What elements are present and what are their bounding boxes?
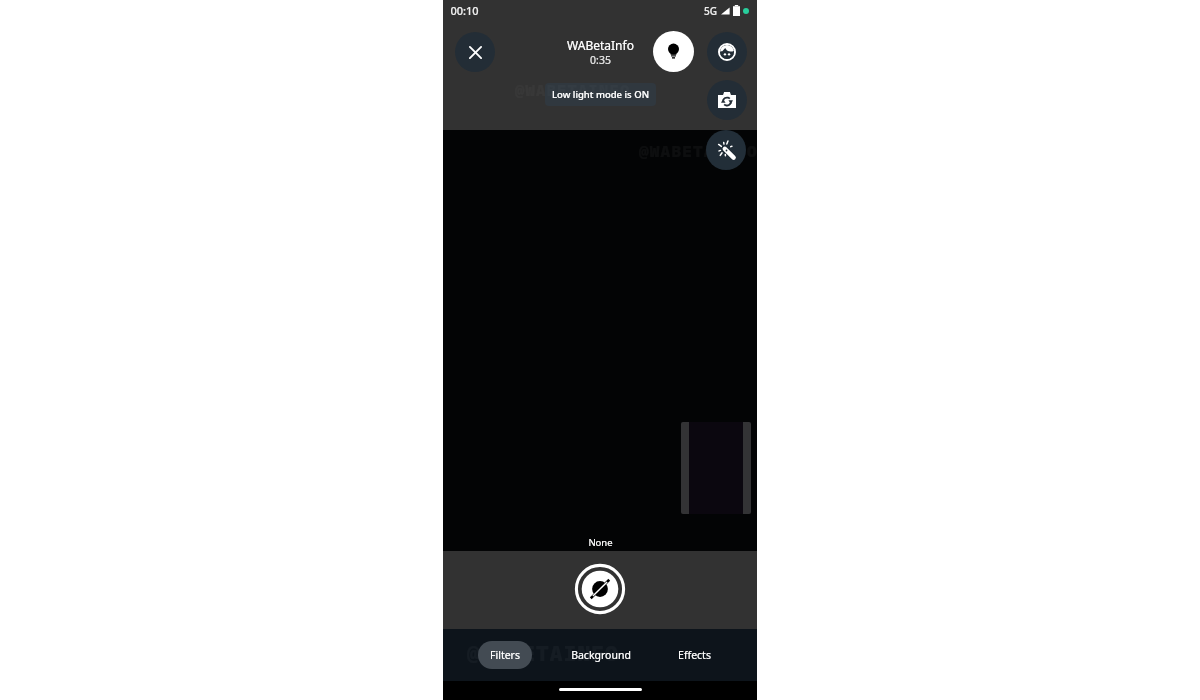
- staticText: Filters: [490, 648, 520, 662]
- staticText: 00:10: [450, 3, 479, 18]
- staticText: Low light mode is ON: [552, 88, 649, 101]
- staticText: @WABETAINFO: [515, 79, 631, 100]
- staticText: @WABETAINFO: [467, 639, 619, 668]
- button[interactable]: Low light mode: [653, 31, 694, 72]
- staticText: Background: [571, 648, 631, 662]
- button[interactable]: Effects: [672, 641, 717, 669]
- button[interactable]: End call: [455, 32, 495, 72]
- staticText: 5G: [704, 4, 717, 18]
- staticText: WABetaInfo: [567, 37, 634, 53]
- button[interactable]: Avatar: [707, 32, 747, 72]
- button[interactable]: Background: [565, 641, 637, 669]
- button[interactable]: Effects: [706, 130, 746, 170]
- button[interactable]: Filters: [478, 641, 532, 669]
- staticText: 0:35: [590, 53, 611, 67]
- button[interactable]: No filter: [574, 563, 626, 615]
- staticText: None: [588, 536, 613, 549]
- button[interactable]: Flip camera: [707, 80, 747, 120]
- staticText: @WABETAINFO: [639, 140, 758, 162]
- staticText: Effects: [678, 648, 711, 662]
